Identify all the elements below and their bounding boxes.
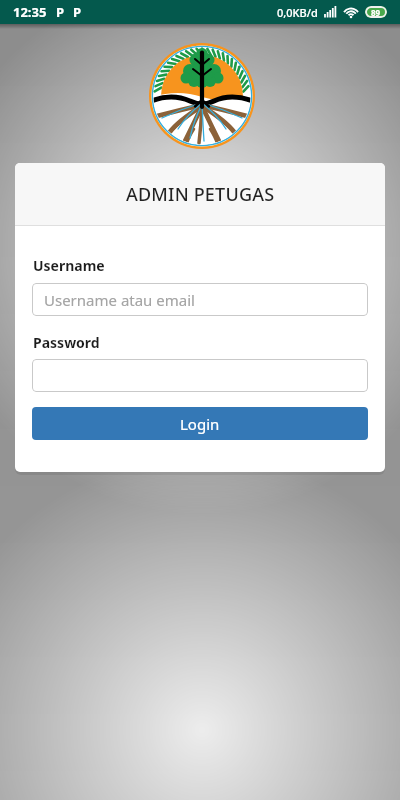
staticText: Password bbox=[33, 333, 100, 352]
staticText: Username bbox=[33, 256, 105, 275]
staticText: 89 bbox=[371, 7, 381, 18]
staticText: Username atau email bbox=[44, 290, 195, 310]
staticText: P bbox=[56, 3, 65, 21]
staticText: ADMIN PETUGAS bbox=[126, 182, 275, 207]
button[interactable]: Login bbox=[32, 407, 368, 440]
staticText: 0,0KB/d bbox=[277, 5, 318, 20]
button[interactable]: Username atau email bbox=[32, 283, 368, 316]
staticText: P bbox=[73, 3, 82, 21]
button[interactable] bbox=[32, 359, 368, 392]
staticText: Login bbox=[180, 414, 220, 434]
staticText: 12:35 bbox=[13, 3, 47, 21]
